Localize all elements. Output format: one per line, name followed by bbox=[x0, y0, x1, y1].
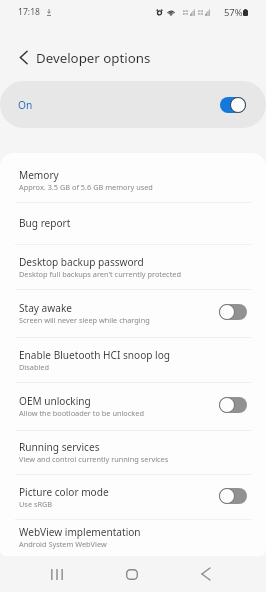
button[interactable]: Navigate up bbox=[11, 45, 35, 69]
button[interactable]: OEM unlocking bbox=[0, 383, 266, 431]
staticText: Allow the bootloader to be unlocked bbox=[19, 408, 144, 418]
staticText: Stay awake bbox=[19, 301, 72, 315]
staticText: Approx. 3.5 GB of 5.6 GB memory used bbox=[19, 182, 153, 192]
button[interactable]: Back bbox=[186, 556, 226, 592]
staticText: Enable Bluetooth HCI snoop log bbox=[19, 348, 171, 362]
button[interactable]: Recent apps bbox=[37, 556, 77, 592]
staticText: Bug report bbox=[19, 216, 71, 230]
button[interactable]: Enable Bluetooth HCI snoop log bbox=[0, 338, 266, 383]
staticText: Disabled bbox=[19, 362, 49, 372]
staticText: WebView implementation bbox=[19, 525, 141, 539]
staticText: OEM unlocking bbox=[19, 394, 91, 408]
staticText: Developer options bbox=[36, 49, 151, 67]
button[interactable]: WebView implementation bbox=[0, 520, 266, 556]
staticText: 57% bbox=[224, 6, 243, 19]
staticText: Desktop full backups aren't currently pr… bbox=[19, 269, 181, 279]
staticText: Desktop backup password bbox=[19, 255, 144, 269]
staticText: Screen will never sleep while charging bbox=[19, 315, 150, 325]
staticText: View and control currently running servi… bbox=[19, 454, 169, 464]
button[interactable]: Desktop backup password bbox=[0, 245, 266, 290]
staticText: Running services bbox=[19, 440, 100, 454]
button[interactable]: Picture color mode bbox=[0, 475, 266, 520]
staticText: Android System WebView bbox=[19, 539, 107, 549]
button[interactable]: On bbox=[0, 81, 266, 128]
button[interactable]: Running services bbox=[0, 431, 266, 475]
button[interactable]: Stay awake bbox=[0, 290, 266, 338]
staticText: On bbox=[18, 98, 33, 112]
staticText: Picture color mode bbox=[19, 485, 109, 499]
staticText: Memory bbox=[19, 168, 59, 182]
staticText: Use sRGB bbox=[19, 499, 53, 509]
button[interactable]: Home bbox=[112, 556, 152, 592]
staticText: 17:18 bbox=[18, 6, 40, 18]
button[interactable]: Bug report bbox=[0, 203, 266, 245]
button[interactable]: Memory bbox=[0, 158, 266, 203]
